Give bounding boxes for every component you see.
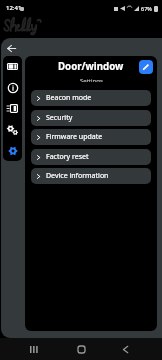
staticText: Settings (80, 77, 103, 82)
button[interactable]: Device (3, 56, 22, 77)
button[interactable]: Battery (3, 98, 22, 119)
staticText: Security (46, 113, 73, 123)
staticText: 12:41 (6, 4, 22, 12)
staticText: Factory reset (46, 152, 89, 162)
button[interactable]: Info (3, 77, 22, 98)
staticText: Beacon mode (46, 93, 92, 103)
staticText: Device information (46, 171, 109, 181)
button[interactable]: Firmware update (31, 129, 151, 145)
staticText: 67% (141, 5, 152, 12)
button[interactable]: Device information (31, 168, 151, 184)
button[interactable]: Home (69, 338, 93, 360)
button[interactable]: Actions (3, 119, 22, 140)
staticText: Door/window (58, 60, 124, 73)
button[interactable]: Settings (3, 140, 22, 161)
button[interactable]: Beacon mode (31, 90, 151, 106)
button[interactable]: Back (3, 40, 20, 57)
button[interactable]: Recent apps (22, 338, 46, 360)
button[interactable]: Back (113, 338, 137, 360)
button[interactable]: Security (31, 110, 151, 126)
staticText: Firmware update (46, 132, 103, 142)
button[interactable]: Edit (139, 60, 153, 74)
button[interactable]: Factory reset (31, 149, 151, 165)
